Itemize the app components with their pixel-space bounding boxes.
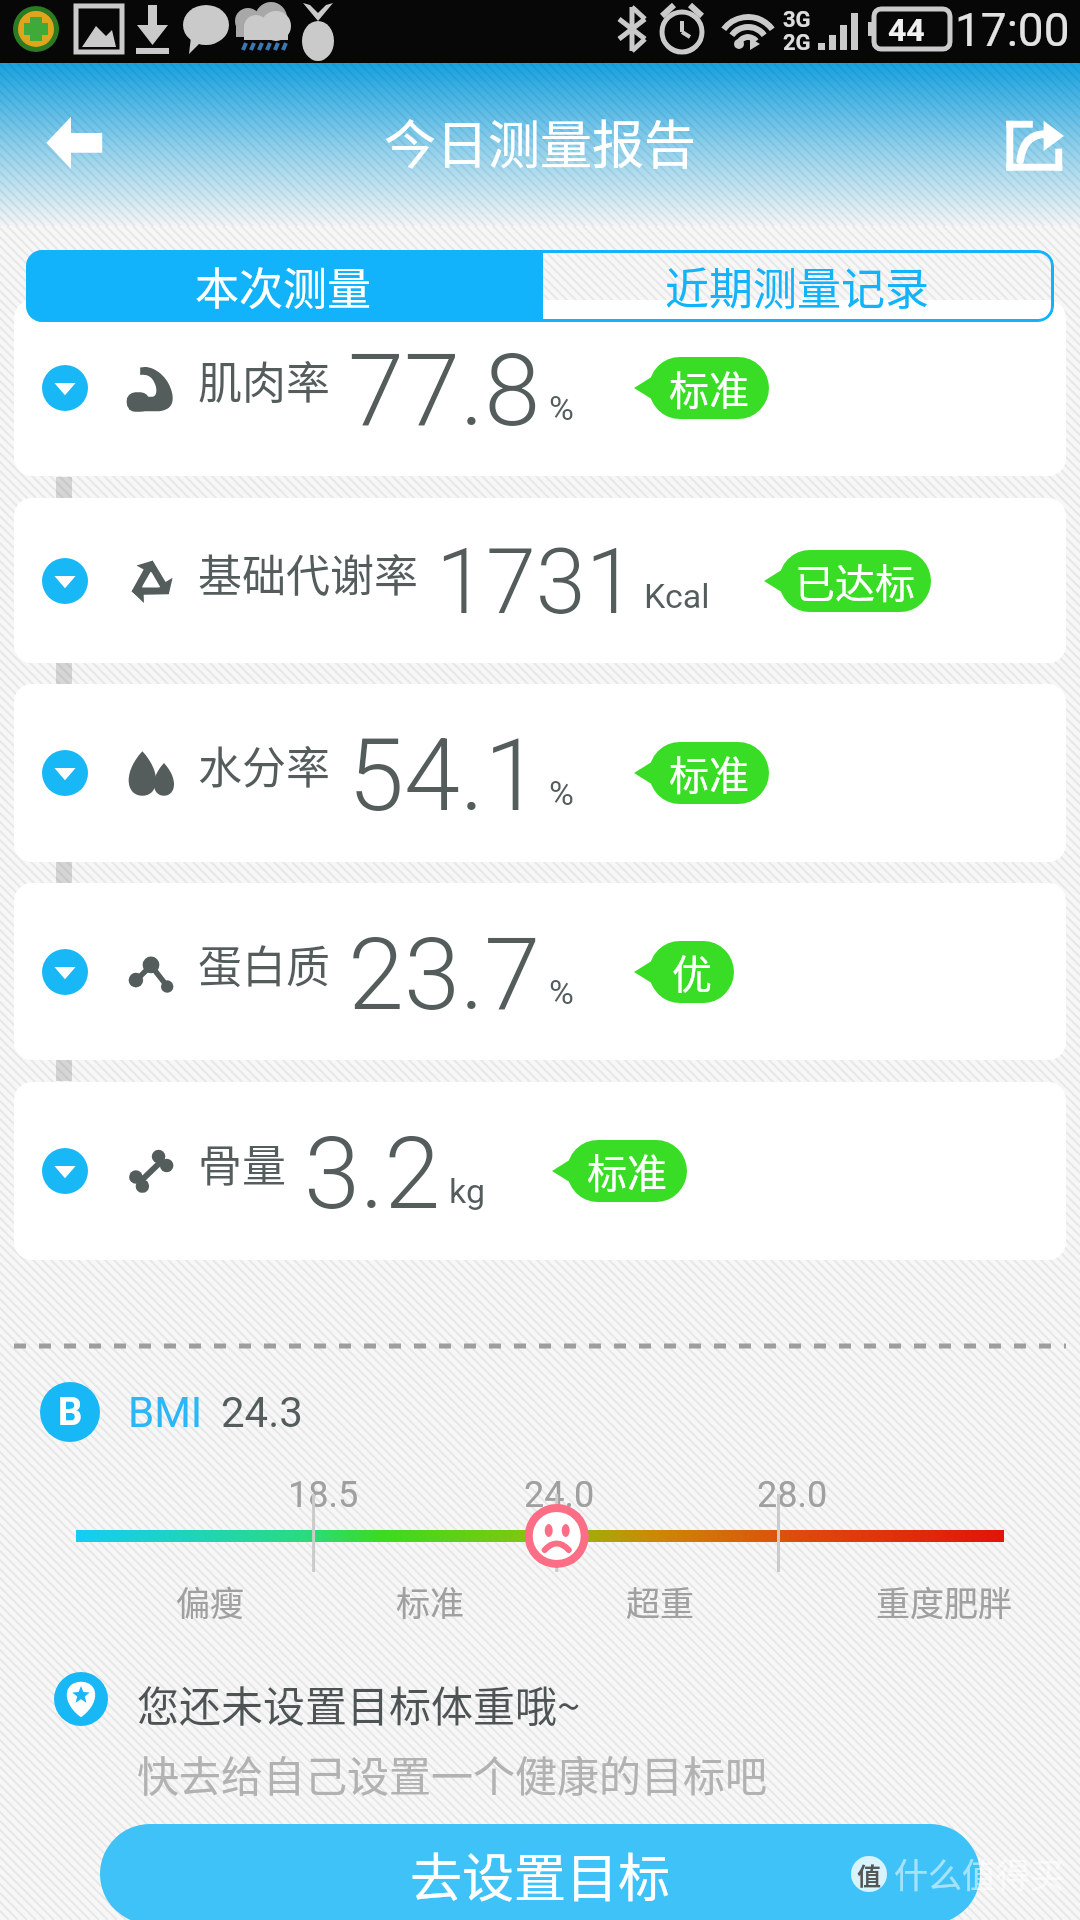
button[interactable]: 基础代谢率 — [14, 498, 1066, 663]
button[interactable]: 肌肉率 — [14, 300, 1066, 476]
staticText: 今日测量报告 — [384, 104, 697, 179]
staticText: 肌肉率 — [198, 348, 330, 412]
button[interactable]: 蛋白质 — [14, 883, 1066, 1060]
button[interactable]: 骨量 — [14, 1082, 1066, 1260]
staticText: 标准 — [396, 1577, 464, 1626]
staticText: % — [549, 773, 574, 813]
staticText: 23.7 — [348, 915, 541, 1033]
staticText: 44 — [888, 11, 925, 49]
staticText: 水分率 — [198, 733, 330, 797]
staticText: Kcal — [644, 576, 710, 616]
staticText: 28.0 — [757, 1474, 828, 1516]
staticText: 本次测量 — [195, 254, 371, 318]
button[interactable]: Back — [44, 115, 104, 173]
staticText: 蛋白质 — [198, 932, 330, 996]
staticText: 重度肥胖 — [876, 1577, 1012, 1626]
staticText: 3.2 — [304, 1114, 441, 1232]
staticText: 基础代谢率 — [198, 541, 418, 605]
staticText: 17:00 — [955, 3, 1070, 57]
staticText: % — [549, 388, 574, 428]
staticText: 标准 — [587, 1142, 667, 1200]
staticText: B — [58, 1390, 83, 1435]
button[interactable]: 近期测量记录 — [540, 250, 1054, 322]
staticText: 偏瘦 — [176, 1577, 244, 1626]
button[interactable]: Share — [1004, 115, 1064, 173]
staticText: 18.5 — [288, 1474, 359, 1516]
staticText: 值 — [857, 1857, 881, 1892]
button[interactable]: 水分率 — [14, 684, 1066, 862]
staticText: 您还未设置目标体重哦~ — [137, 1673, 581, 1734]
staticText: 54.1 — [348, 716, 541, 834]
staticText: 2G — [783, 30, 811, 56]
staticText: 去设置目标 — [410, 1837, 671, 1912]
staticText: 近期测量记录 — [665, 254, 929, 318]
staticText: 优 — [672, 943, 712, 1001]
staticText: kg — [449, 1171, 485, 1211]
staticText: 什么值得买 — [894, 1849, 1064, 1898]
staticText: BMI — [128, 1388, 203, 1437]
staticText: 超重 — [626, 1577, 694, 1626]
staticText: 3G — [783, 7, 811, 33]
staticText: 24.0 — [524, 1474, 595, 1516]
button[interactable]: 本次测量 — [26, 250, 540, 322]
button[interactable]: 去设置目标 — [100, 1824, 980, 1920]
staticText: 骨量 — [198, 1131, 286, 1195]
staticText: % — [549, 972, 574, 1012]
staticText: 24.3 — [221, 1388, 303, 1437]
staticText: 快去给自己设置一个健康的目标吧 — [137, 1743, 768, 1804]
staticText: 77.8 — [348, 331, 541, 449]
staticText: 已达标 — [795, 552, 915, 610]
staticText: 标准 — [669, 744, 749, 802]
staticText: 1731 — [436, 530, 636, 635]
staticText: 标准 — [669, 359, 749, 417]
